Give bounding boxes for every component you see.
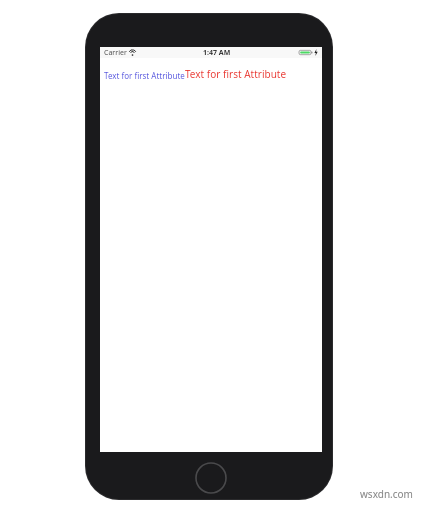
- staticText: 1:47 AM: [203, 48, 231, 58]
- staticText: wsxdn.com: [360, 487, 413, 501]
- button[interactable]: Home: [195, 462, 227, 494]
- button[interactable]: Text for first Attribute: [185, 67, 287, 81]
- button[interactable]: Text for first Attribute: [104, 70, 185, 81]
- staticText: Carrier: [104, 48, 127, 58]
